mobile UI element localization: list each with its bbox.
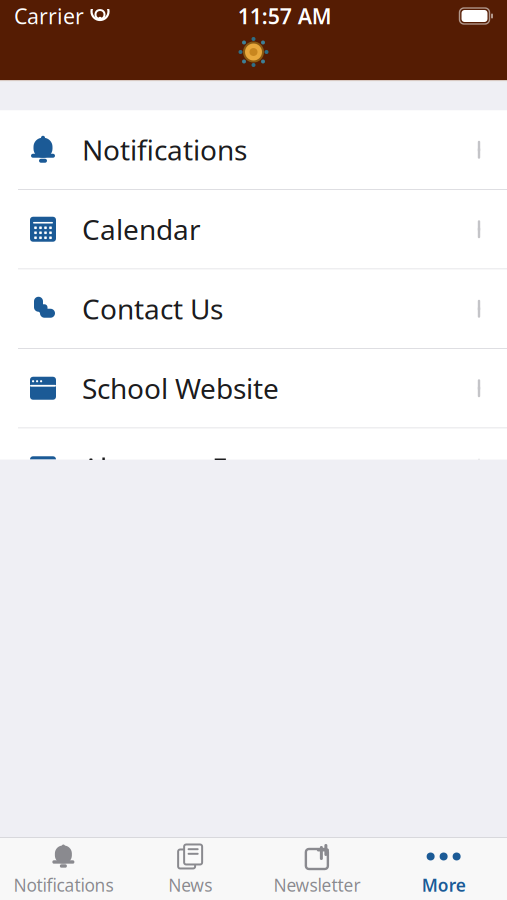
staticText: Notifications — [82, 131, 247, 168]
staticText: Contact Us — [82, 290, 223, 327]
staticText: 11:57 AM — [238, 2, 332, 30]
staticText: More — [422, 873, 466, 896]
button[interactable]: Contact Us — [0, 269, 507, 348]
staticText: Notifications — [13, 873, 113, 896]
button[interactable]: News — [127, 838, 254, 900]
staticText: Carrier — [14, 2, 84, 30]
button[interactable]: Calendar — [0, 190, 507, 268]
button[interactable]: Newsletter — [253, 838, 380, 900]
button[interactable]: More — [380, 838, 507, 900]
staticText: News — [168, 873, 212, 896]
staticText: School Website — [82, 370, 279, 407]
button[interactable]: Absentee Form — [0, 428, 507, 507]
button[interactable]: Notifications — [0, 838, 127, 900]
staticText: Absentee Form — [82, 449, 282, 486]
staticText: Newsletter — [273, 873, 360, 896]
button[interactable]: Notifications — [0, 110, 507, 189]
staticText: Calendar — [82, 211, 201, 248]
button[interactable]: School Website — [0, 349, 507, 427]
